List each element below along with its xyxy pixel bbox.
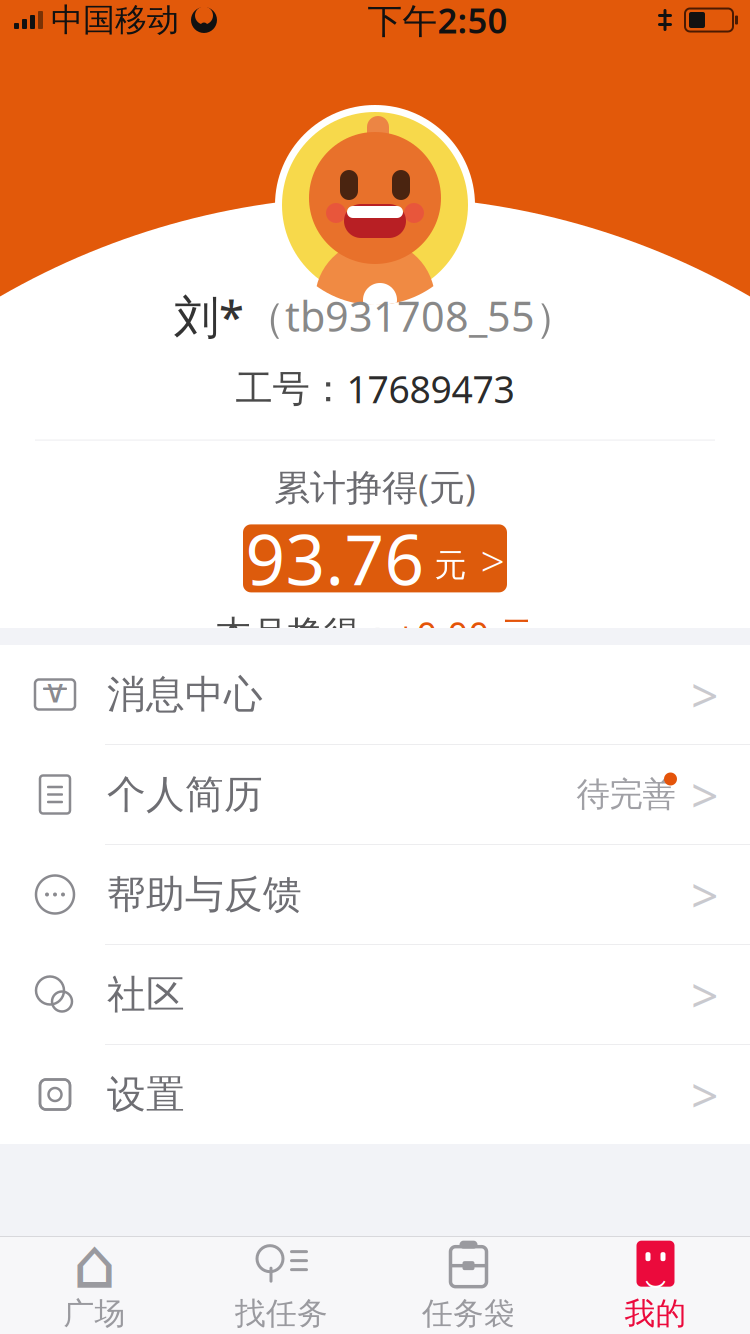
button[interactable]: ‿ <box>562 1237 749 1334</box>
staticText: 累计挣得(元) <box>274 463 476 510</box>
staticText: 设置 <box>107 1071 185 1118</box>
staticText: 17689473 <box>346 364 514 414</box>
staticText: +0.00 元 <box>395 610 534 658</box>
button[interactable]: ∨ <box>0 645 750 745</box>
staticText: > <box>691 1063 718 1126</box>
button[interactable]: 设置 <box>0 1045 750 1144</box>
staticText: 刘* <box>174 286 244 346</box>
staticText: 工号： <box>235 366 346 412</box>
staticText: 93.76 <box>245 512 424 604</box>
staticText: > <box>691 663 718 726</box>
button[interactable]: 帮助与反馈 <box>0 845 750 945</box>
staticText: > <box>691 863 718 926</box>
staticText: 下午2:50 <box>367 0 507 43</box>
button[interactable]: 找任务 <box>188 1237 375 1334</box>
button[interactable]: 个人简历 <box>0 745 750 845</box>
button[interactable]: 社区 <box>0 945 750 1045</box>
staticText: 社区 <box>107 971 185 1018</box>
staticText: ⌂ <box>72 1224 116 1303</box>
staticText: 中国移动 <box>51 0 179 40</box>
staticText: 帮助与反馈 <box>107 871 302 918</box>
button[interactable]: 93.76 <box>243 524 507 592</box>
staticText: > <box>691 963 718 1026</box>
staticText: > <box>691 763 718 826</box>
staticText: 我的 <box>624 1295 686 1332</box>
staticText: 个人简历 <box>107 771 263 818</box>
staticText: 任务袋 <box>422 1295 515 1332</box>
staticText: 消息中心 <box>107 671 263 718</box>
staticText: 元 <box>434 546 466 585</box>
staticText: 广场 <box>63 1295 125 1332</box>
staticText: 待完善 <box>576 774 675 815</box>
button[interactable]: ⌂ <box>1 1237 188 1334</box>
staticText: ∨ <box>43 673 66 710</box>
button[interactable]: 任务袋 <box>375 1237 562 1334</box>
staticText: 找任务 <box>235 1295 328 1332</box>
staticText: 本月挣得： <box>215 612 395 656</box>
staticText: ‿ <box>645 1244 666 1290</box>
staticText: > <box>480 532 504 589</box>
staticText: （tb931708_55） <box>244 288 576 343</box>
